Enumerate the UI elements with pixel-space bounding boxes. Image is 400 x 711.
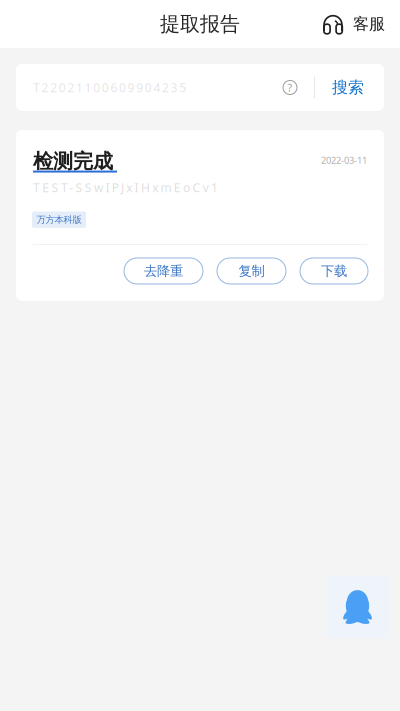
button[interactable]: 客服: [323, 14, 400, 34]
staticText: 客服: [353, 14, 385, 34]
button[interactable]: 搜索: [315, 78, 384, 97]
staticText: 提取报告: [160, 12, 240, 36]
button[interactable]: QQ Customer Service: [326, 576, 389, 638]
staticText: 2022-03-11: [321, 154, 367, 166]
staticText: ?: [287, 80, 292, 95]
staticText: 搜索: [332, 78, 364, 97]
button[interactable]: 去降重: [124, 258, 203, 284]
staticText: 万方本科版: [36, 214, 81, 225]
staticText: 复制: [238, 263, 264, 279]
staticText: TEST-SSwIPJxIHxmEoCv1: [33, 180, 218, 195]
staticText: T22021100609904235: [33, 79, 186, 95]
staticText: 去降重: [144, 263, 183, 279]
staticText: 下载: [321, 263, 347, 279]
staticText: 检测完成: [33, 149, 113, 174]
button[interactable]: 复制: [217, 258, 286, 284]
button[interactable]: 下载: [300, 258, 368, 284]
